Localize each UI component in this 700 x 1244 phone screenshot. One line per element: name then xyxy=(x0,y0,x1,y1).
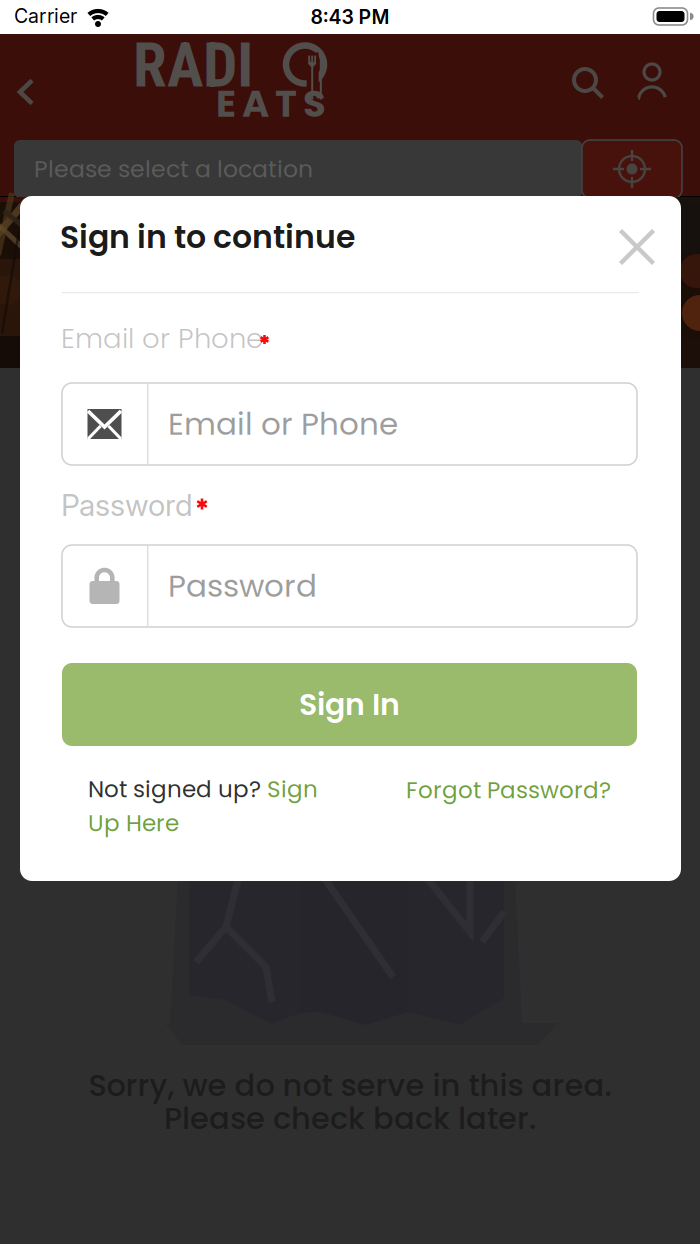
staticText: 8:43 PM xyxy=(310,5,389,29)
staticText: Password xyxy=(168,564,317,608)
staticText: Password xyxy=(61,487,193,523)
staticText: Up Here xyxy=(88,807,179,839)
button[interactable]: Password xyxy=(62,545,637,627)
staticText: Email or Phone xyxy=(168,402,398,446)
staticText: Please check back later. xyxy=(164,1097,536,1140)
staticText: EATS xyxy=(216,78,326,130)
staticText: Sign xyxy=(267,773,318,805)
button[interactable]: Back xyxy=(6,70,46,114)
button[interactable]: Sign In xyxy=(62,663,637,746)
button[interactable]: Account xyxy=(630,60,674,104)
staticText: Carrier xyxy=(14,4,77,28)
button[interactable]: Not signed up? xyxy=(88,773,318,839)
button[interactable]: Forgot Password? xyxy=(406,774,611,806)
button[interactable]: Close xyxy=(613,223,661,271)
button[interactable]: Use current location xyxy=(582,140,682,198)
staticText: Sign In xyxy=(299,683,400,725)
staticText: Forgot Password? xyxy=(406,774,611,806)
staticText: Please select a location xyxy=(34,153,313,185)
button[interactable]: Email or Phone xyxy=(62,383,637,465)
button[interactable]: Search xyxy=(566,61,610,105)
staticText: Email or Phone xyxy=(61,319,263,357)
staticText: Sorry, we do not serve in this area. xyxy=(88,1064,611,1107)
button[interactable]: Please select a location xyxy=(14,140,582,198)
staticText: RADI xyxy=(133,30,253,101)
staticText: Sign in to continue xyxy=(60,215,355,259)
staticText: Not signed up? xyxy=(88,773,267,805)
